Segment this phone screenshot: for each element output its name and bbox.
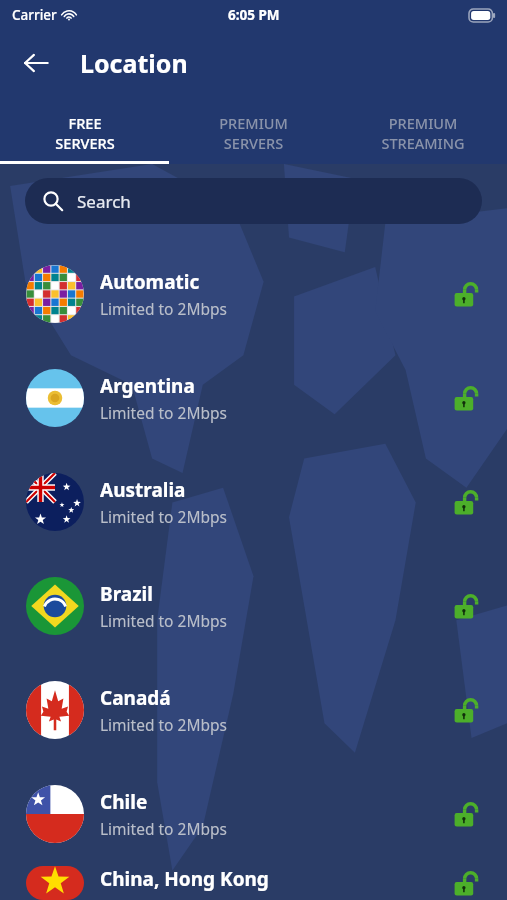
staticText: FREE SERVERS — [55, 113, 115, 153]
staticText: Automatic — [100, 269, 200, 295]
staticText: 6:05 PM — [228, 6, 280, 24]
button[interactable]: Automatic — [0, 242, 507, 346]
staticText: Search — [77, 190, 131, 213]
button[interactable]: Back — [10, 37, 62, 89]
staticText: Location — [80, 46, 188, 80]
button[interactable]: China, Hong Kong — [0, 866, 507, 900]
button[interactable]: Search — [25, 178, 482, 224]
button[interactable]: PREMIUM SERVERS — [169, 96, 338, 164]
button[interactable]: FREE SERVERS — [0, 96, 169, 164]
staticText: China, Hong Kong — [100, 866, 269, 892]
staticText: Argentina — [100, 373, 195, 399]
staticText: Australia — [100, 477, 186, 503]
staticText: Limited to 2Mbps — [100, 506, 227, 527]
staticText: Canadá — [100, 685, 171, 711]
staticText: Limited to 2Mbps — [100, 714, 227, 735]
staticText: Limited to 2Mbps — [100, 402, 227, 423]
staticText: Brazil — [100, 581, 153, 607]
button[interactable]: Chile — [0, 762, 507, 866]
staticText: Limited to 2Mbps — [100, 818, 227, 839]
button[interactable]: Brazil — [0, 554, 507, 658]
button[interactable]: Argentina — [0, 346, 507, 450]
staticText: PREMIUM SERVERS — [219, 113, 288, 153]
button[interactable]: Canadá — [0, 658, 507, 762]
staticText: PREMIUM STREAMING — [381, 113, 465, 153]
button[interactable]: PREMIUM STREAMING — [338, 96, 507, 164]
staticText: Chile — [100, 789, 148, 815]
staticText: Limited to 2Mbps — [100, 610, 227, 631]
staticText: Limited to 2Mbps — [100, 298, 227, 319]
staticText: Carrier — [12, 6, 57, 24]
button[interactable]: Australia — [0, 450, 507, 554]
